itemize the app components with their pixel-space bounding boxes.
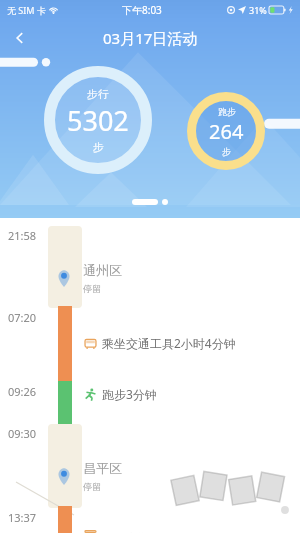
staticText: 步 xyxy=(222,146,231,157)
button[interactable]: 跑步 264 步 xyxy=(187,92,265,170)
staticText: 停留 xyxy=(83,283,101,294)
staticText: 无 SIM 卡 xyxy=(7,4,46,16)
button[interactable]: 昌平区 xyxy=(0,456,300,496)
staticText: 步行 xyxy=(87,87,109,101)
staticText: 264 xyxy=(209,118,244,145)
staticText: 03月17日活动 xyxy=(103,28,198,48)
button[interactable]: 步行 5302 步 xyxy=(44,66,152,174)
staticText: 昌平区 xyxy=(83,460,122,476)
staticText: 09:26 xyxy=(8,384,37,399)
staticText: 21:58 xyxy=(8,228,37,243)
staticText: 31% xyxy=(249,4,267,16)
staticText: 下午8:03 xyxy=(122,3,162,17)
button[interactable]: 乘坐交通工具2小时4分钟 xyxy=(84,331,300,355)
staticText: 07:20 xyxy=(8,310,37,325)
staticText: 通州区 xyxy=(83,262,122,278)
staticText: 跑步 xyxy=(218,106,236,117)
staticText: 09:30 xyxy=(8,426,37,441)
button[interactable]: 跑步3分钟 xyxy=(84,382,300,406)
staticText: 13:37 xyxy=(8,510,37,525)
button[interactable]: 返回 xyxy=(0,20,40,56)
staticText: 步 xyxy=(93,140,104,154)
button[interactable]: 乘坐交通工具20分钟 xyxy=(84,530,300,533)
staticText: 跑步3分钟 xyxy=(102,386,157,402)
staticText: 5302 xyxy=(67,102,129,139)
staticText: 停留 xyxy=(83,481,101,492)
button[interactable]: 通州区 xyxy=(0,258,300,298)
staticText: 乘坐交通工具2小时4分钟 xyxy=(102,335,236,351)
